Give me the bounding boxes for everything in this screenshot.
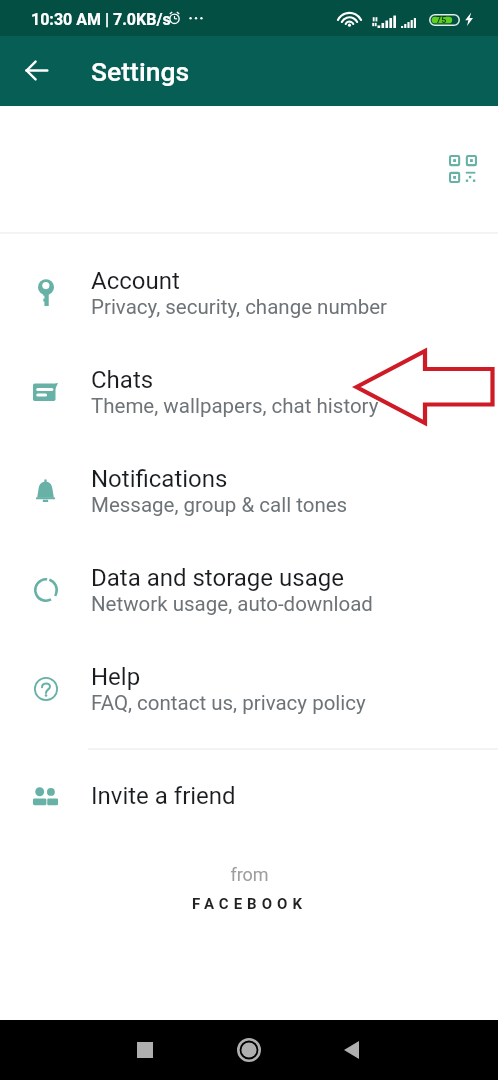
staticText: Notifications: [91, 465, 228, 493]
staticText: 10:30 AM | 7.0KB/s: [31, 10, 171, 29]
button[interactable]: QR code: [439, 145, 487, 193]
button[interactable]: Recents: [121, 1026, 169, 1074]
button[interactable]: Invite a friend: [0, 751, 498, 841]
staticText: 75: [436, 15, 447, 26]
staticText: Privacy, security, change number: [91, 295, 388, 319]
button[interactable]: Help: [0, 630, 498, 729]
staticText: FAQ, contact us, privacy policy: [91, 691, 366, 715]
staticText: Theme, wallpapers, chat history: [91, 394, 379, 418]
button[interactable]: Back: [12, 46, 60, 94]
staticText: Help: [91, 663, 141, 691]
staticText: Data and storage usage: [91, 564, 344, 592]
button[interactable]: Home: [225, 1026, 273, 1074]
staticText: Network usage, auto-download: [91, 592, 373, 616]
staticText: from: [230, 864, 269, 885]
staticText: Chats: [91, 366, 154, 394]
button[interactable]: Data and storage usage: [0, 531, 498, 630]
button[interactable]: Notifications: [0, 432, 498, 531]
staticText: Settings: [91, 56, 190, 87]
button[interactable]: Chats: [0, 333, 498, 432]
staticText: Message, group & call tones: [91, 493, 348, 517]
button[interactable]: Back: [327, 1026, 375, 1074]
staticText: Account: [91, 267, 180, 295]
staticText: Invite a friend: [91, 782, 236, 810]
staticText: FACEBOOK: [192, 895, 307, 913]
button[interactable]: Account: [0, 234, 498, 333]
